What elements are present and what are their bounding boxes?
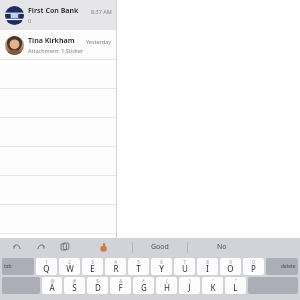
staticText: " (235, 278, 237, 284)
button[interactable]: " (225, 277, 246, 294)
button[interactable]: App 0 (121, 287, 133, 299)
staticText: No (217, 242, 227, 252)
staticText: 7 (183, 259, 186, 265)
staticText: 1 (45, 259, 48, 265)
button[interactable]: * (133, 277, 154, 294)
button[interactable]: 6 (151, 258, 172, 275)
button[interactable]: App 2 (157, 287, 169, 299)
staticText: H (164, 282, 170, 293)
staticText: G (141, 282, 147, 293)
staticText: 0 (28, 17, 32, 24)
staticText: delete (281, 263, 296, 270)
button[interactable]: Thumbs up (96, 240, 110, 254)
button[interactable]: 2 (59, 258, 80, 275)
staticText: 9 (229, 259, 232, 265)
staticText: * (142, 278, 145, 284)
staticText: Y (159, 263, 164, 274)
staticText: P (251, 263, 256, 274)
button[interactable]: Text Message (159, 269, 295, 282)
button[interactable]: Tina Kirkham (0, 30, 116, 59)
button[interactable]: App 6 (229, 287, 241, 299)
button[interactable]: Good (133, 238, 187, 256)
staticText: J (188, 282, 191, 293)
button[interactable]: 4 (105, 258, 126, 275)
button[interactable]: 9 (220, 258, 241, 275)
staticText: S (72, 282, 77, 293)
staticText: A (49, 282, 55, 293)
staticText: D (95, 282, 101, 293)
staticText: Q (43, 263, 50, 274)
staticText: Good (151, 242, 169, 252)
button[interactable]: 7 (174, 258, 195, 275)
button[interactable]: No (188, 238, 256, 256)
staticText: K (210, 282, 216, 293)
button[interactable]: ) (179, 277, 200, 294)
staticText: ) (189, 278, 191, 284)
staticText: O (227, 263, 234, 274)
staticText: 8:37 AM (91, 8, 112, 15)
staticText: 5 (137, 259, 140, 265)
button[interactable]: 0 (243, 258, 264, 275)
staticText: @ (50, 278, 55, 284)
staticText: R (113, 263, 119, 274)
staticText: 2 (68, 259, 71, 265)
staticText: F (118, 282, 123, 293)
staticText: U (182, 263, 188, 274)
button[interactable]: Undo (10, 240, 24, 254)
button[interactable]: 1 (36, 258, 57, 275)
staticText: Text Message (167, 272, 206, 280)
button[interactable]: delete (266, 258, 298, 275)
staticText: E (90, 263, 95, 274)
staticText: & (119, 278, 123, 284)
staticText: ' (212, 278, 214, 284)
staticText: 0 (252, 259, 255, 265)
button[interactable]: Redo (34, 240, 48, 254)
button[interactable]: App Store (140, 269, 154, 283)
button[interactable]: Camera (122, 269, 136, 283)
button[interactable]: ' (202, 277, 223, 294)
staticText: Yesterday (86, 38, 112, 45)
button[interactable]: & (110, 277, 131, 294)
button[interactable]: Send (280, 271, 290, 281)
button[interactable]: App 7 (247, 287, 259, 299)
staticText: tab (4, 263, 12, 270)
button[interactable]: Paste (58, 240, 72, 254)
staticText: 3 (91, 259, 94, 265)
button[interactable]: $ (87, 277, 108, 294)
button[interactable]: App 8 (265, 287, 277, 299)
button[interactable]: tab (2, 258, 34, 275)
staticText: Tina Kirkham (28, 36, 75, 46)
button[interactable]: 8 (197, 258, 218, 275)
button[interactable]: 5 (128, 258, 149, 275)
button[interactable]: App 1 (139, 287, 151, 299)
button[interactable]: App 4 (193, 287, 205, 299)
staticText: I (206, 263, 209, 274)
staticText: 6 (160, 259, 163, 265)
staticText: 8 (206, 259, 209, 265)
staticText: $ (96, 278, 99, 284)
button[interactable]: ( (156, 277, 177, 294)
staticText: L (233, 282, 238, 293)
button[interactable]: First Con Bank (0, 0, 116, 29)
staticText: T (136, 263, 141, 274)
button[interactable]: App 3 (175, 287, 187, 299)
staticText: 4 (114, 259, 117, 265)
button[interactable]: @ (42, 277, 62, 294)
staticText: First Con Bank (28, 6, 79, 16)
staticText: ( (166, 278, 168, 284)
button[interactable]: # (64, 277, 85, 294)
button[interactable]: App 5 (211, 287, 223, 299)
button[interactable]: 3 (82, 258, 103, 275)
staticText: W (66, 263, 74, 274)
staticText: # (73, 278, 76, 284)
staticText: Attachment: 1 Sticker (28, 47, 84, 54)
button[interactable]: App 9 (283, 287, 295, 299)
